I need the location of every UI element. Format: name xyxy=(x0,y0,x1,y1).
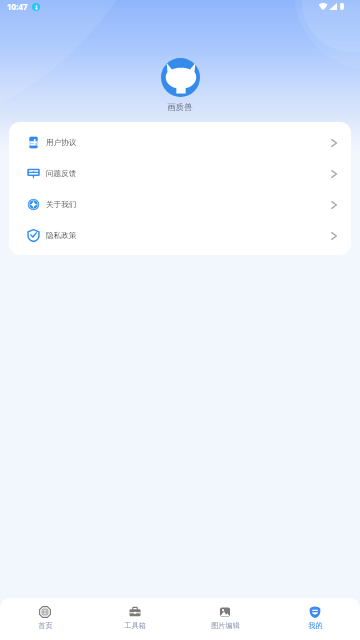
button[interactable]: 首页 xyxy=(0,600,90,638)
staticText: 画质兽 xyxy=(167,102,193,113)
staticText: 图片编辑 xyxy=(211,621,240,630)
button[interactable]: 隐私政策 xyxy=(9,220,351,251)
staticText: 我的 xyxy=(308,621,323,630)
staticText: 10:47 xyxy=(7,1,28,12)
button[interactable]: Profile avatar xyxy=(161,58,200,97)
staticText: 首页 xyxy=(38,621,53,630)
button[interactable]: 工具箱 xyxy=(90,600,180,638)
button[interactable]: 我的 xyxy=(270,600,360,638)
button[interactable]: 用户协议 xyxy=(9,127,351,158)
staticText: 用户协议 xyxy=(46,138,77,148)
staticText: 隐私政策 xyxy=(46,231,77,241)
staticText: 问题反馈 xyxy=(46,169,77,179)
button[interactable]: 图片编辑 xyxy=(180,600,270,638)
staticText: 工具箱 xyxy=(124,621,146,630)
button[interactable]: 关于我们 xyxy=(9,189,351,220)
button[interactable]: 问题反馈 xyxy=(9,158,351,189)
staticText: 关于我们 xyxy=(46,200,77,210)
